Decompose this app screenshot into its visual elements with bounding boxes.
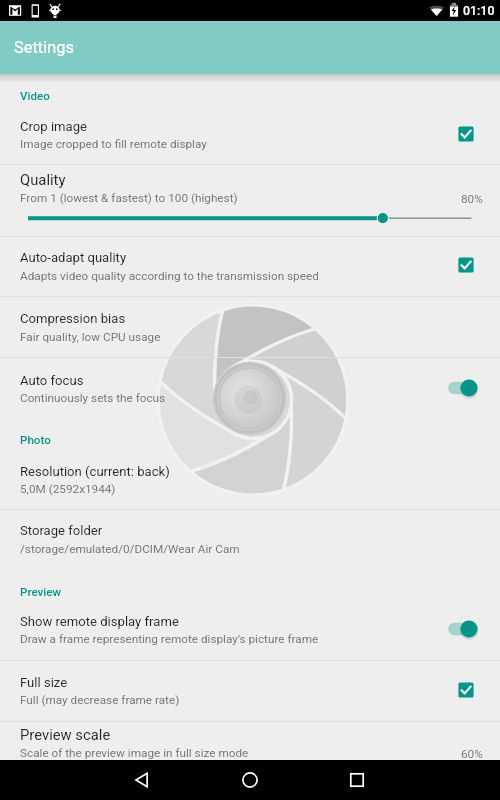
staticText: Resolution (current: back)	[20, 464, 170, 479]
button[interactable]	[0, 600, 500, 660]
button[interactable]	[0, 449, 500, 509]
staticText: Crop image	[20, 119, 87, 134]
staticText: 01:10	[463, 3, 495, 18]
staticText: Scale of the preview image in full size …	[20, 746, 249, 760]
button[interactable]: Quality slider	[0, 206, 500, 230]
button[interactable]: Toggle checkbox	[451, 675, 481, 705]
staticText: 5,0M (2592x1944)	[20, 482, 116, 496]
staticText: Auto-adapt quality	[20, 250, 127, 265]
button[interactable]	[0, 237, 500, 296]
staticText: Adapts video quality according to the tr…	[20, 269, 319, 283]
button[interactable]	[0, 165, 500, 236]
staticText: Full size	[20, 675, 68, 690]
staticText: 60%	[461, 747, 483, 761]
button[interactable]	[0, 297, 500, 357]
button[interactable]	[0, 661, 500, 721]
staticText: Photo	[20, 433, 51, 447]
staticText: Image cropped to fill remote display	[20, 137, 207, 151]
staticText: Continuously sets the focus	[20, 391, 166, 405]
button[interactable]	[0, 358, 500, 417]
button[interactable]: Toggle checkbox	[451, 250, 481, 280]
staticText: From 1 (lowest & fastest) to 100 (highes…	[20, 191, 238, 205]
staticText: Settings	[14, 38, 74, 57]
button[interactable]: Toggle switch	[436, 374, 478, 402]
staticText: Show remote display frame	[20, 614, 179, 629]
button[interactable]: Back	[121, 760, 165, 800]
staticText: Video	[20, 89, 50, 103]
button[interactable]	[0, 510, 500, 569]
button[interactable]: Recent apps	[335, 760, 379, 800]
staticText: Storage folder	[20, 523, 103, 538]
staticText: Full (may decrease frame rate)	[20, 693, 180, 707]
button[interactable]: Toggle switch	[436, 615, 478, 643]
button[interactable]	[0, 722, 500, 760]
staticText: Preview	[20, 585, 62, 599]
staticText: /storage/emulated/0/DCIM/Wear Air Cam	[20, 542, 240, 556]
staticText: Preview scale	[20, 726, 111, 743]
staticText: Quality	[20, 171, 66, 188]
staticText: 80%	[461, 192, 483, 206]
button[interactable]	[0, 104, 500, 164]
staticText: Compression bias	[20, 311, 126, 326]
staticText: Fair quality, low CPU usage	[20, 330, 161, 344]
button[interactable]: Toggle checkbox	[451, 119, 481, 149]
staticText: Draw a frame representing remote display…	[20, 632, 319, 646]
staticText: Auto focus	[20, 373, 84, 388]
button[interactable]: Home	[228, 760, 272, 800]
